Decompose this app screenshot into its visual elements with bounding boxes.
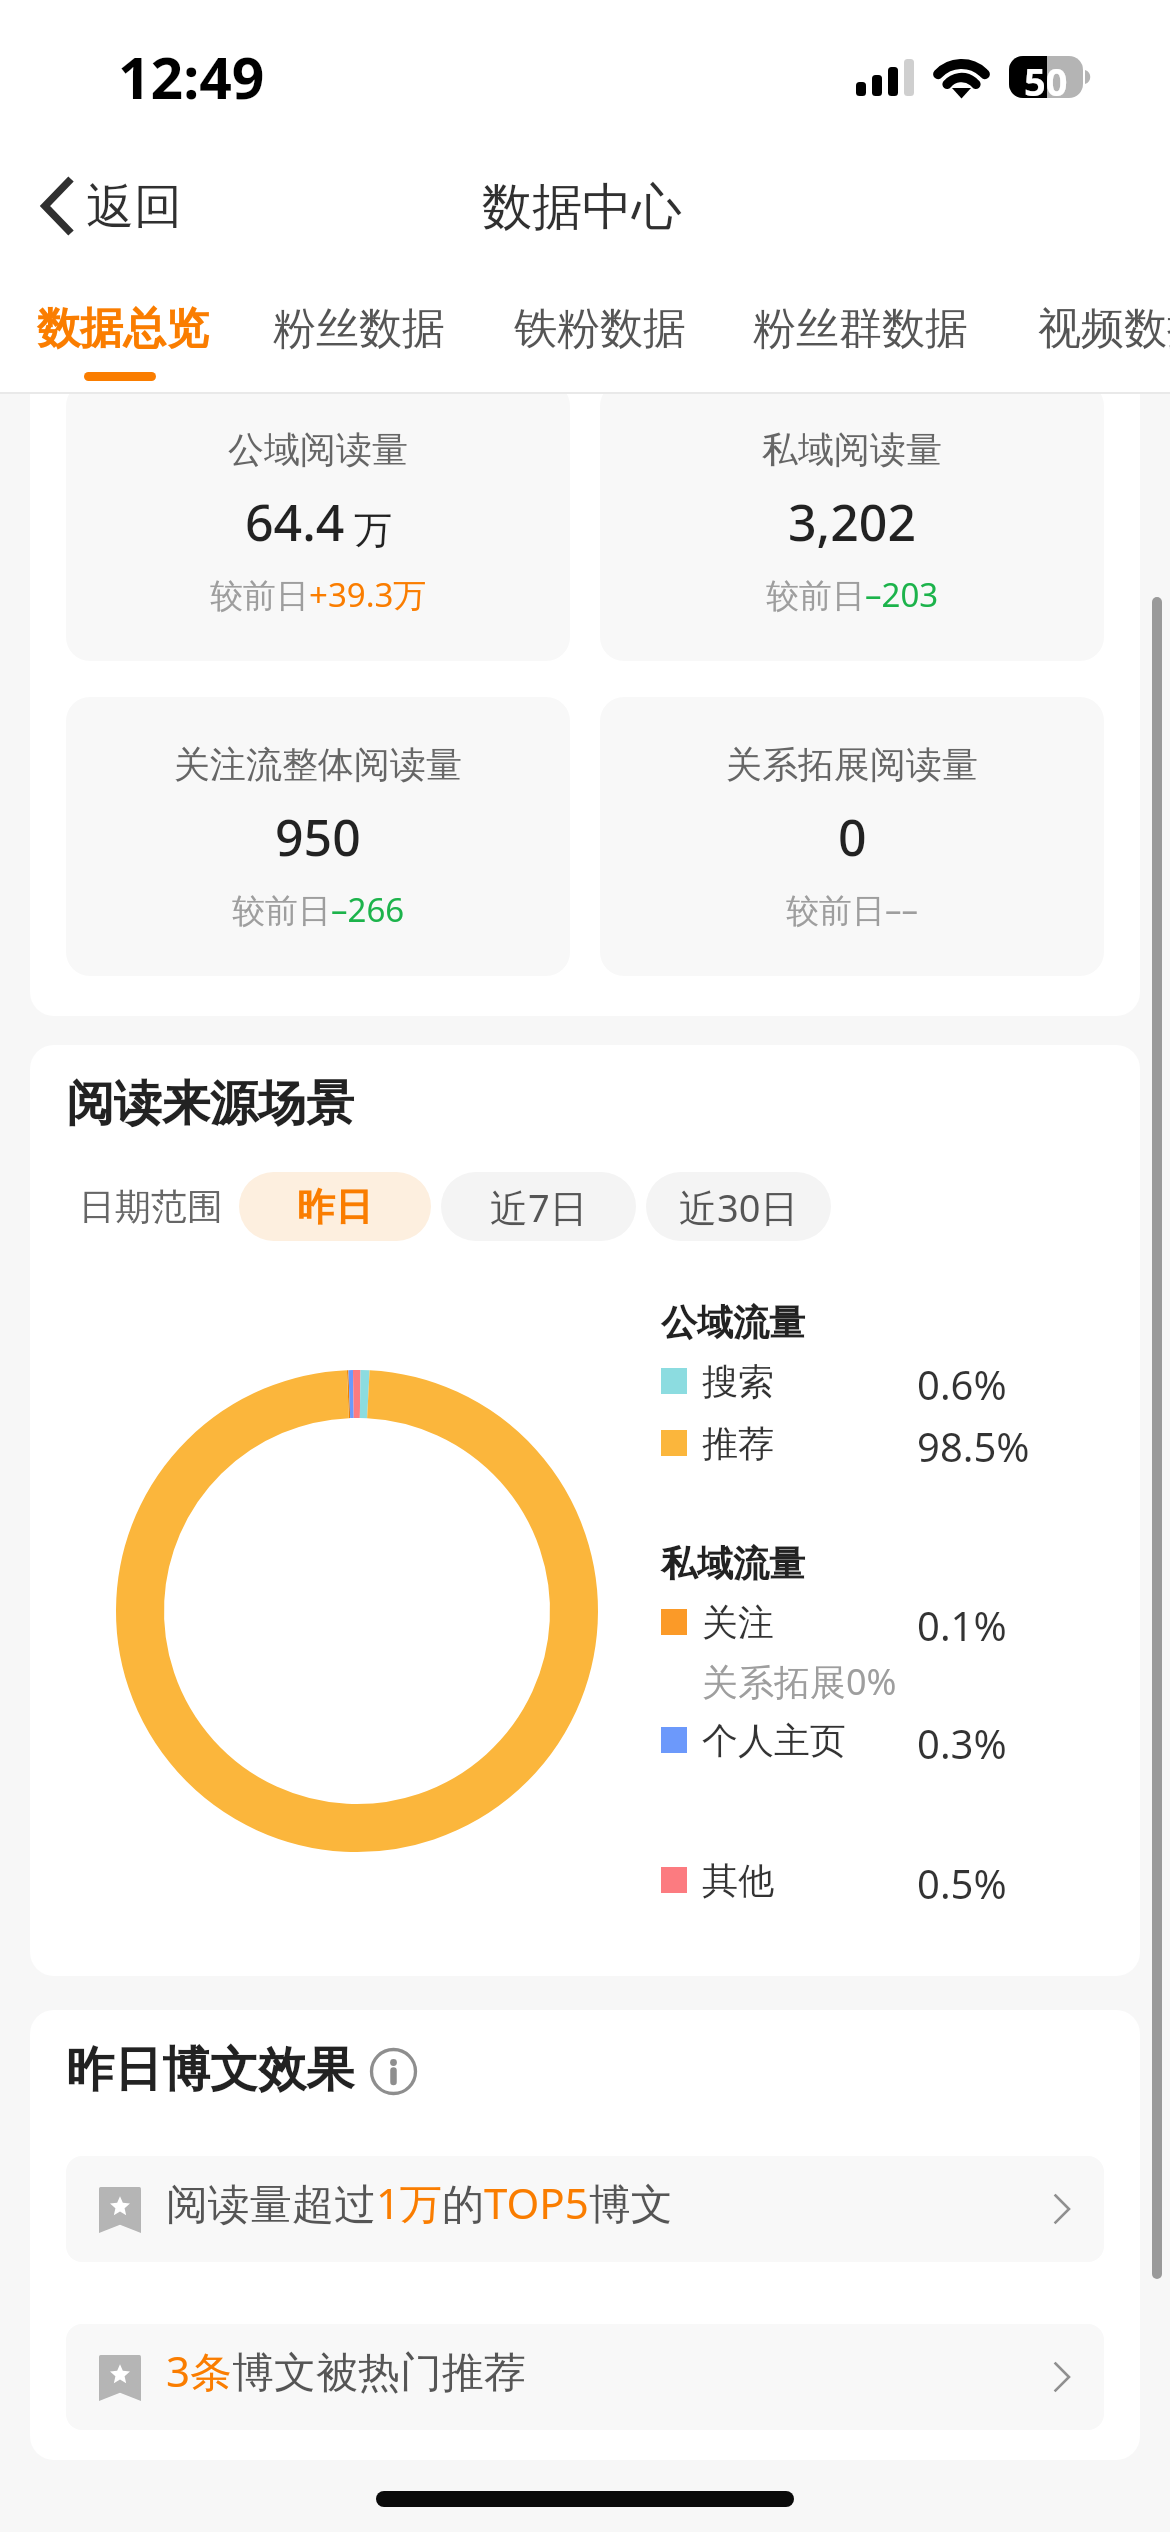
staticText: 返回 [86,177,182,237]
staticText: 个人主页 [702,1718,846,1763]
button[interactable]: 关注流整体阅读量 [66,697,570,976]
staticText: 粉丝群数据 [753,302,968,356]
staticText: 铁粉数据 [514,302,686,356]
staticText: 950 [275,803,361,871]
button[interactable]: 铁粉数据 [488,276,712,393]
staticText: 阅读量超过1万的TOP5博文 [166,2174,673,2231]
staticText: 较前日–– [786,887,918,932]
button[interactable]: 关系拓展阅读量 [600,697,1104,976]
staticText: 关注 [702,1600,774,1645]
button[interactable]: 数据总览 [11,276,235,393]
staticText: 昨日 [297,1183,373,1231]
staticText: 昨日博文效果 [66,2040,354,2100]
button[interactable]: 近7日 [441,1172,636,1241]
staticText: 推荐 [702,1421,774,1466]
staticText: 3,202 [788,488,917,556]
staticText: 50 [1024,55,1068,97]
staticText: 万 [354,506,392,554]
button[interactable]: 视频数据 [1012,276,1170,393]
staticText: 私域阅读量 [762,427,942,472]
staticText: 数据总览 [37,302,209,356]
button[interactable]: 公域阅读量 [66,382,570,661]
staticText: 关系拓展阅读量 [726,742,978,787]
staticText: 较前日–266 [232,887,405,932]
staticText: 公域阅读量 [228,427,408,472]
staticText: 0.1% [917,1598,1007,1652]
button[interactable]: 粉丝群数据 [727,276,994,393]
staticText: 数据中心 [482,176,682,239]
staticText: 3条博文被热门推荐 [166,2342,527,2399]
button[interactable]: 返回 [24,158,202,256]
staticText: 98.5% [917,1419,1030,1473]
staticText: 搜索 [702,1359,774,1404]
button[interactable]: About yesterday's post stats [370,2048,417,2095]
staticText: 视频数据 [1038,302,1170,356]
staticText: 12:49 [118,38,265,116]
button[interactable]: 近30日 [646,1172,831,1241]
button[interactable]: 阅读量超过1万的TOP5博文 [66,2156,1104,2262]
staticText: 0.6% [917,1357,1007,1411]
staticText: 较前日–203 [766,572,939,617]
button[interactable]: 3条博文被热门推荐 [66,2324,1104,2430]
staticText: 较前日+39.3万 [210,572,427,617]
staticText: 近7日 [490,1181,588,1233]
staticText: 0 [838,803,867,871]
staticText: 0.3% [917,1716,1007,1770]
staticText: 关系拓展0% [702,1657,897,1706]
staticText: 其他 [702,1858,774,1903]
staticText: 0.5% [917,1856,1007,1910]
button[interactable]: 私域阅读量 [600,382,1104,661]
staticText: 粉丝数据 [273,302,445,356]
staticText: 日期范围 [79,1184,223,1229]
staticText: 关注流整体阅读量 [174,742,462,787]
staticText: 私域流量 [661,1541,805,1586]
staticText: 公域流量 [661,1300,805,1345]
button[interactable]: 昨日 [239,1172,431,1241]
staticText: 64.4 [245,488,345,556]
button[interactable]: 粉丝数据 [247,276,471,393]
staticText: 近30日 [679,1181,799,1233]
staticText: 阅读来源场景 [66,1074,354,1134]
